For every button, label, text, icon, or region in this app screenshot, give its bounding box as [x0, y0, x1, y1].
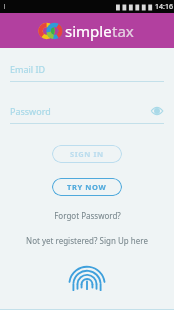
staticText: 14:16 — [155, 2, 173, 12]
staticText: simple — [65, 21, 112, 41]
staticText: TRY NOW — [67, 182, 107, 192]
button[interactable]: Email ID — [10, 60, 164, 82]
staticText: Not yet registered? Sign Up here — [26, 235, 148, 246]
button[interactable]: Password — [10, 102, 164, 124]
button[interactable]: Fingerprint login — [70, 264, 104, 298]
staticText: tax — [112, 21, 134, 41]
staticText: SIGN IN — [70, 149, 104, 159]
staticText: Password — [10, 105, 51, 117]
button[interactable]: Forgot Password? — [48, 208, 127, 223]
staticText: Forgot Password? — [54, 210, 121, 221]
button[interactable]: Not yet registered? Sign Up here — [20, 233, 154, 248]
button[interactable]: TRY NOW — [52, 178, 122, 196]
staticText: Email ID — [10, 63, 46, 75]
button[interactable]: SIGN IN — [52, 145, 122, 163]
button[interactable]: Show password — [150, 104, 164, 118]
